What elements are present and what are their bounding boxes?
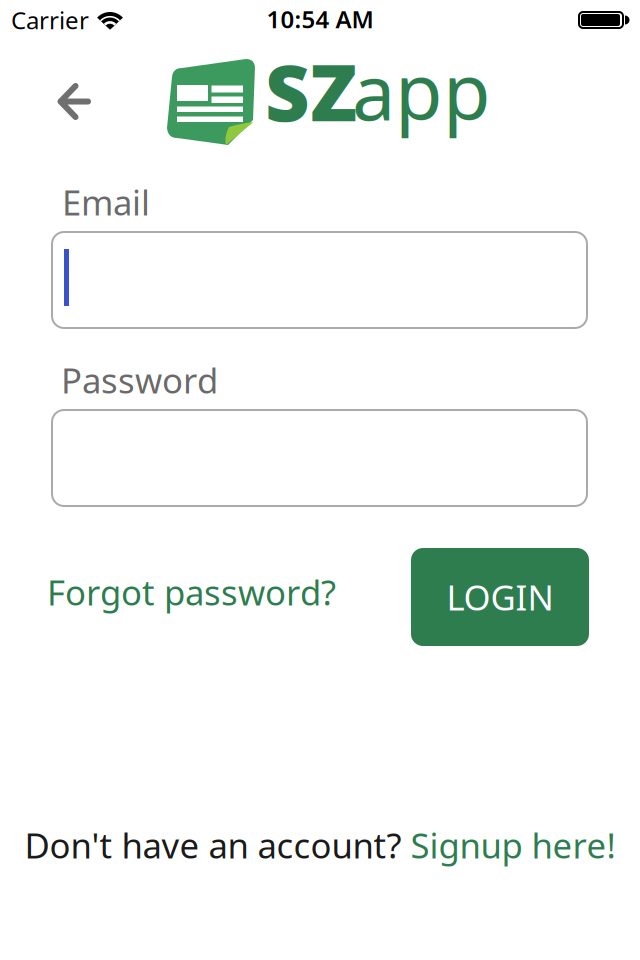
staticText: LOGIN xyxy=(446,574,553,620)
button[interactable]: LOGIN xyxy=(411,548,589,646)
staticText: app xyxy=(352,39,491,142)
staticText: Password xyxy=(61,357,218,403)
staticText: Carrier xyxy=(11,4,89,36)
staticText: Forgot password? xyxy=(47,569,336,615)
staticText: SZ xyxy=(265,40,357,143)
button[interactable]: Forgot password? xyxy=(47,569,336,615)
staticText: Don't have an account? xyxy=(24,822,410,868)
button[interactable]: Signup here! xyxy=(410,822,615,868)
staticText: Email xyxy=(62,179,150,225)
button[interactable] xyxy=(51,409,588,507)
button[interactable] xyxy=(51,231,588,329)
staticText: 10:54 AM xyxy=(266,3,373,35)
staticText: Signup here! xyxy=(410,822,615,868)
button[interactable] xyxy=(51,79,95,123)
